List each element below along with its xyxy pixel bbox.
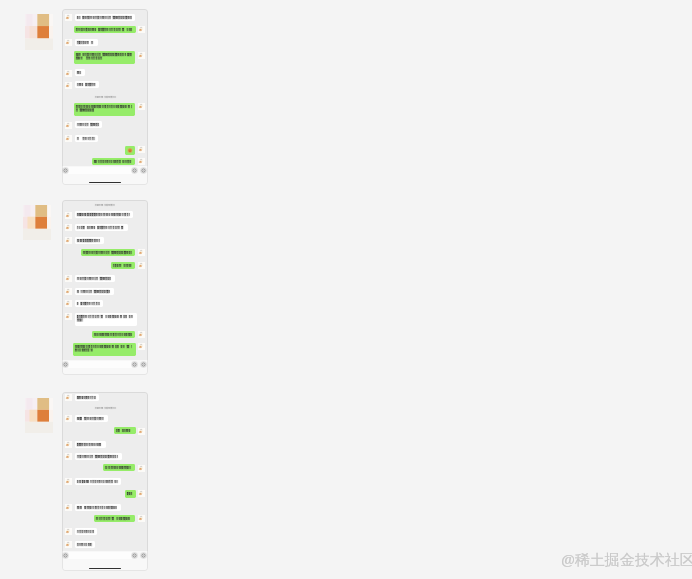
button[interactable] [92, 331, 135, 338]
button[interactable]: Sender avatar [65, 478, 72, 485]
button[interactable] [114, 427, 136, 434]
staticText: @稀土掘金技术社区 [561, 549, 692, 569]
button[interactable]: Sender avatar [65, 504, 72, 511]
button[interactable]: Emoji [132, 553, 137, 558]
button[interactable] [92, 158, 135, 165]
button[interactable] [75, 237, 104, 244]
button[interactable] [75, 453, 122, 460]
button[interactable]: Voice input [63, 362, 68, 367]
button[interactable]: Voice input [63, 168, 68, 173]
button[interactable]: Sender avatar [65, 415, 72, 422]
button[interactable] [75, 313, 137, 326]
button[interactable]: Sender avatar [65, 224, 72, 231]
button[interactable]: Sender avatar [65, 39, 72, 46]
button[interactable] [111, 262, 135, 269]
button[interactable]: Sender avatar [138, 465, 145, 472]
button[interactable] [75, 541, 95, 548]
button[interactable]: Sender avatar [138, 26, 145, 33]
button[interactable] [103, 464, 135, 471]
button[interactable] [75, 39, 98, 46]
button[interactable]: Sender avatar [138, 428, 145, 435]
button[interactable] [81, 249, 135, 256]
button[interactable]: Sender avatar [65, 82, 72, 89]
button[interactable]: Sender avatar [138, 343, 145, 350]
button[interactable] [75, 121, 102, 128]
button[interactable]: Sender avatar [65, 14, 72, 21]
button[interactable]: Sender avatar [65, 453, 72, 460]
button[interactable]: Sender avatar [138, 146, 145, 153]
button[interactable]: Sender avatar [65, 394, 72, 401]
button[interactable]: Sender avatar [65, 288, 72, 295]
button[interactable]: Sender avatar [65, 313, 72, 320]
button[interactable]: Sender avatar [138, 490, 145, 497]
button[interactable] [75, 478, 121, 485]
button[interactable] [75, 275, 115, 282]
button[interactable]: Sender avatar [65, 70, 72, 77]
button[interactable]: Sender avatar [65, 237, 72, 244]
button[interactable]: Sender avatar [62, 200, 148, 375]
button[interactable]: Sender avatar [65, 122, 72, 129]
button[interactable] [75, 69, 85, 76]
button[interactable] [75, 528, 97, 535]
button[interactable] [75, 135, 98, 142]
button[interactable] [75, 394, 99, 401]
button[interactable]: Sender avatar [65, 441, 72, 448]
button[interactable] [75, 441, 106, 448]
button[interactable] [73, 343, 136, 356]
button[interactable] [75, 415, 108, 422]
button[interactable] [75, 14, 135, 21]
button[interactable]: Sender avatar [138, 262, 145, 269]
button[interactable]: Voice input [63, 553, 68, 558]
button[interactable]: Sender avatar [65, 541, 72, 548]
button[interactable] [75, 224, 128, 231]
button[interactable]: Contact photo [25, 14, 53, 50]
button[interactable]: Sender avatar [138, 158, 145, 165]
button[interactable]: Sender avatar [138, 52, 145, 59]
button[interactable]: Contact photo [23, 205, 51, 240]
button[interactable]: Contact photo [25, 398, 53, 433]
button[interactable] [125, 146, 135, 155]
button[interactable] [74, 26, 136, 33]
button[interactable]: Sender avatar [65, 135, 72, 142]
button[interactable]: Sender avatar [65, 275, 72, 282]
button[interactable] [74, 103, 135, 116]
button[interactable] [75, 504, 121, 511]
button[interactable]: More [141, 362, 146, 367]
button[interactable] [75, 211, 133, 218]
button[interactable] [75, 81, 99, 88]
button[interactable]: Sender avatar [65, 528, 72, 535]
button[interactable] [75, 300, 103, 307]
button[interactable]: Sender avatar [65, 212, 72, 219]
button[interactable]: More [141, 553, 146, 558]
button[interactable] [74, 51, 135, 64]
button[interactable]: Sender avatar [138, 103, 145, 110]
button[interactable]: Sender avatar [62, 9, 148, 185]
button[interactable]: Emoji [132, 168, 137, 173]
button[interactable]: Sender avatar [138, 515, 145, 522]
button[interactable]: Sender avatar [138, 249, 145, 256]
button[interactable] [94, 515, 135, 522]
button[interactable]: Sender avatar [62, 392, 148, 571]
button[interactable] [125, 490, 136, 498]
button[interactable]: Sender avatar [138, 331, 145, 338]
button[interactable]: More [141, 168, 146, 173]
button[interactable]: Sender avatar [65, 300, 72, 307]
button[interactable]: Emoji [132, 362, 137, 367]
button[interactable] [75, 288, 114, 295]
